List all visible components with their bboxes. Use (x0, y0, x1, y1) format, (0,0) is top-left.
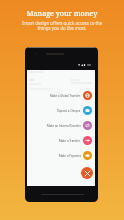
button[interactable]: Make a Payment (59, 151, 92, 160)
button[interactable]: Deposit a Cheque (57, 106, 92, 115)
staticText: Deposit a Cheque (57, 109, 81, 113)
staticText: Make a Global Transfer (50, 94, 81, 98)
staticText: Make a Payment (59, 154, 81, 158)
staticText: Manage your money (0, 8, 124, 18)
button[interactable]: Make an Internal Transfer (47, 121, 92, 130)
button[interactable]: Make a Global Transfer (50, 91, 92, 100)
staticText: Smart design offers quick access to the … (0, 20, 124, 32)
button[interactable]: Make a Transfer (59, 136, 92, 145)
button[interactable]: Close menu (81, 167, 93, 179)
staticText: Make a Transfer (59, 139, 81, 143)
staticText: Make an Internal Transfer (47, 124, 81, 128)
